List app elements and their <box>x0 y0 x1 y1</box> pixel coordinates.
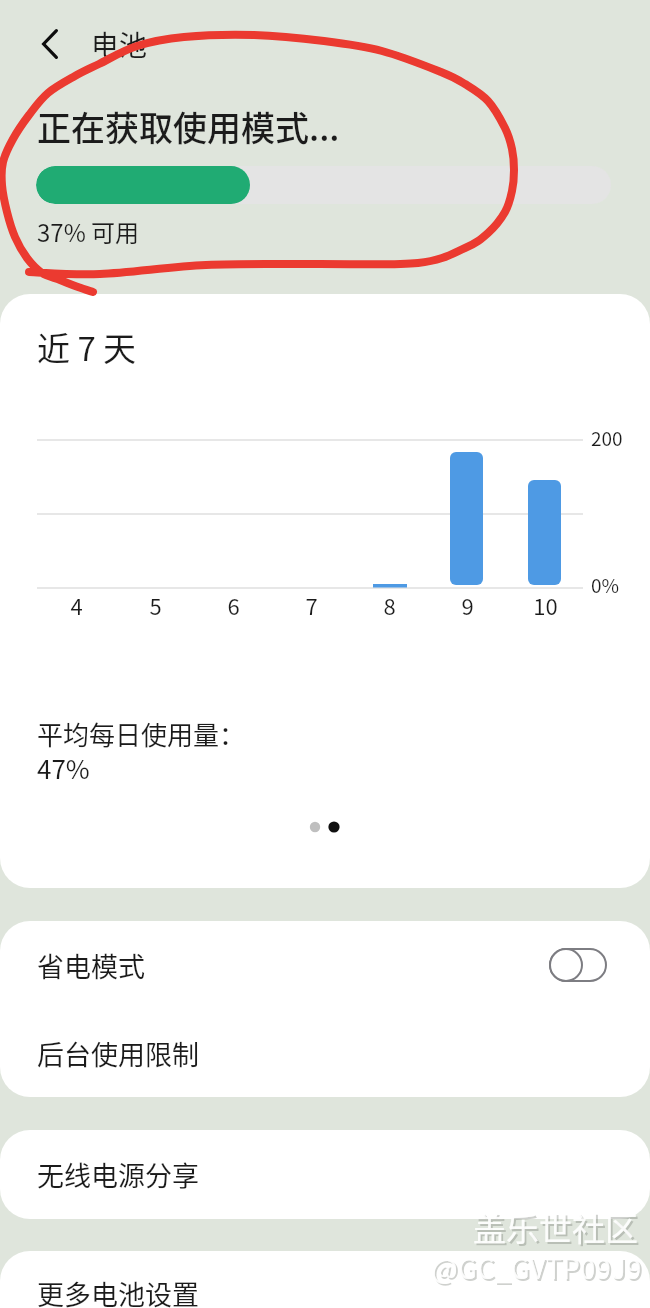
button[interactable]: 更多电池设置 <box>0 1251 650 1308</box>
staticText: 平均每日使用量： <box>37 715 246 753</box>
button[interactable]: 后台使用限制 <box>0 1009 650 1097</box>
staticText: 4 <box>70 589 83 621</box>
staticText: 7 <box>305 589 318 621</box>
button[interactable]: 省电模式 <box>0 921 650 1009</box>
staticText: 200 <box>591 424 623 452</box>
staticText: 近 7 天 <box>37 323 137 371</box>
staticText: 省电模式 <box>37 946 145 985</box>
staticText: 8 <box>383 589 396 621</box>
staticText: 电池 <box>91 24 148 65</box>
staticText: 5 <box>149 589 162 621</box>
button[interactable]: Back <box>22 16 78 72</box>
button[interactable]: Power saving toggle <box>549 948 607 982</box>
staticText: 盖乐世社区 <box>475 1205 640 1253</box>
staticText: @GC_GVTP09J9 <box>433 1249 644 1290</box>
staticText: 盖乐世社区 <box>473 1203 638 1251</box>
staticText: 0% <box>591 571 620 599</box>
staticText: 10 <box>533 589 558 621</box>
staticText: 37% 可用 <box>37 214 140 249</box>
staticText: 正在获取使用模式... <box>37 102 340 151</box>
staticText: 无线电源分享 <box>37 1155 199 1194</box>
staticText: 47% <box>37 749 90 787</box>
staticText: 9 <box>461 589 474 621</box>
staticText: @GC_GVTP09J9 <box>431 1247 642 1288</box>
staticText: 后台使用限制 <box>37 1034 199 1073</box>
button[interactable]: 无线电源分享 <box>0 1130 650 1219</box>
staticText: 6 <box>227 589 240 621</box>
staticText: 更多电池设置 <box>37 1274 199 1308</box>
